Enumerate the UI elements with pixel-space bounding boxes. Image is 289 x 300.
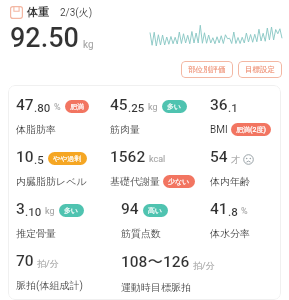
staticText: 36	[210, 96, 228, 114]
staticText: 94	[121, 200, 139, 218]
staticText: 体内年齢	[210, 175, 250, 188]
staticText: 目標設定	[245, 65, 275, 74]
staticText: 脈拍(体組成計)	[16, 279, 83, 292]
staticText: 推定骨量	[16, 227, 56, 240]
staticText: .1	[228, 101, 238, 114]
button[interactable]: 70	[16, 252, 121, 292]
staticText: 運動時目標脈拍	[121, 281, 191, 294]
button[interactable]: 54	[210, 148, 277, 188]
staticText: やや過剰	[53, 154, 82, 163]
staticText: 高い	[148, 206, 163, 215]
staticText: 45	[110, 96, 128, 114]
staticText: 内臓脂肪レベル	[16, 175, 87, 188]
staticText: 多い	[167, 102, 182, 111]
button[interactable]: 108〜126	[121, 252, 277, 294]
staticText: 基礎代謝量	[110, 175, 160, 188]
staticText: 体水分率	[210, 227, 250, 240]
staticText: kcal	[149, 154, 166, 165]
button[interactable]: 45	[110, 96, 210, 136]
staticText: 108〜126	[121, 252, 190, 272]
button[interactable]: 41	[210, 200, 277, 240]
staticText: .25	[128, 101, 145, 114]
staticText: %	[54, 102, 61, 113]
staticText: kg	[148, 102, 158, 113]
staticText: 体脂肪率	[16, 123, 56, 136]
staticText: 70	[16, 252, 34, 270]
staticText: 肥満(2度)	[236, 125, 266, 134]
button[interactable]: 10	[16, 148, 110, 188]
staticText: 部位別評価	[188, 65, 226, 74]
staticText: BMI	[210, 124, 228, 136]
staticText: .5	[34, 153, 44, 166]
staticText: 92.50	[10, 22, 79, 54]
button[interactable]: 47	[16, 96, 110, 136]
staticText: 多い	[64, 206, 79, 215]
staticText: 47	[16, 96, 34, 114]
staticText: 拍/分	[37, 258, 59, 269]
staticText: 3	[16, 200, 25, 218]
button[interactable]: 1562	[110, 148, 210, 188]
staticText: 41	[210, 200, 228, 218]
staticText: %	[241, 206, 248, 217]
staticText: .8	[228, 205, 238, 218]
button[interactable]: 36	[210, 96, 277, 136]
staticText: 体重	[27, 5, 49, 19]
button[interactable]: 部位別評価	[181, 61, 233, 78]
staticText: .10	[25, 205, 42, 218]
staticText: 筋質点数	[121, 227, 161, 240]
staticText: .80	[34, 101, 51, 114]
staticText: 才	[231, 154, 240, 165]
staticText: kg	[83, 39, 94, 51]
staticText: 10	[16, 148, 34, 166]
staticText: 1562	[110, 148, 146, 166]
button[interactable]: 3	[16, 200, 121, 240]
staticText: 少ない	[168, 177, 190, 186]
staticText: 肥満	[70, 102, 84, 111]
staticText: 拍/分	[193, 260, 215, 271]
other: Weight	[10, 6, 23, 19]
staticText: 2/3(火)	[60, 6, 93, 19]
staticText: 54	[210, 148, 228, 166]
staticText: 筋肉量	[110, 123, 140, 136]
button[interactable]: 目標設定	[238, 61, 282, 78]
button[interactable]: 94	[121, 200, 210, 240]
staticText: kg	[45, 206, 55, 217]
